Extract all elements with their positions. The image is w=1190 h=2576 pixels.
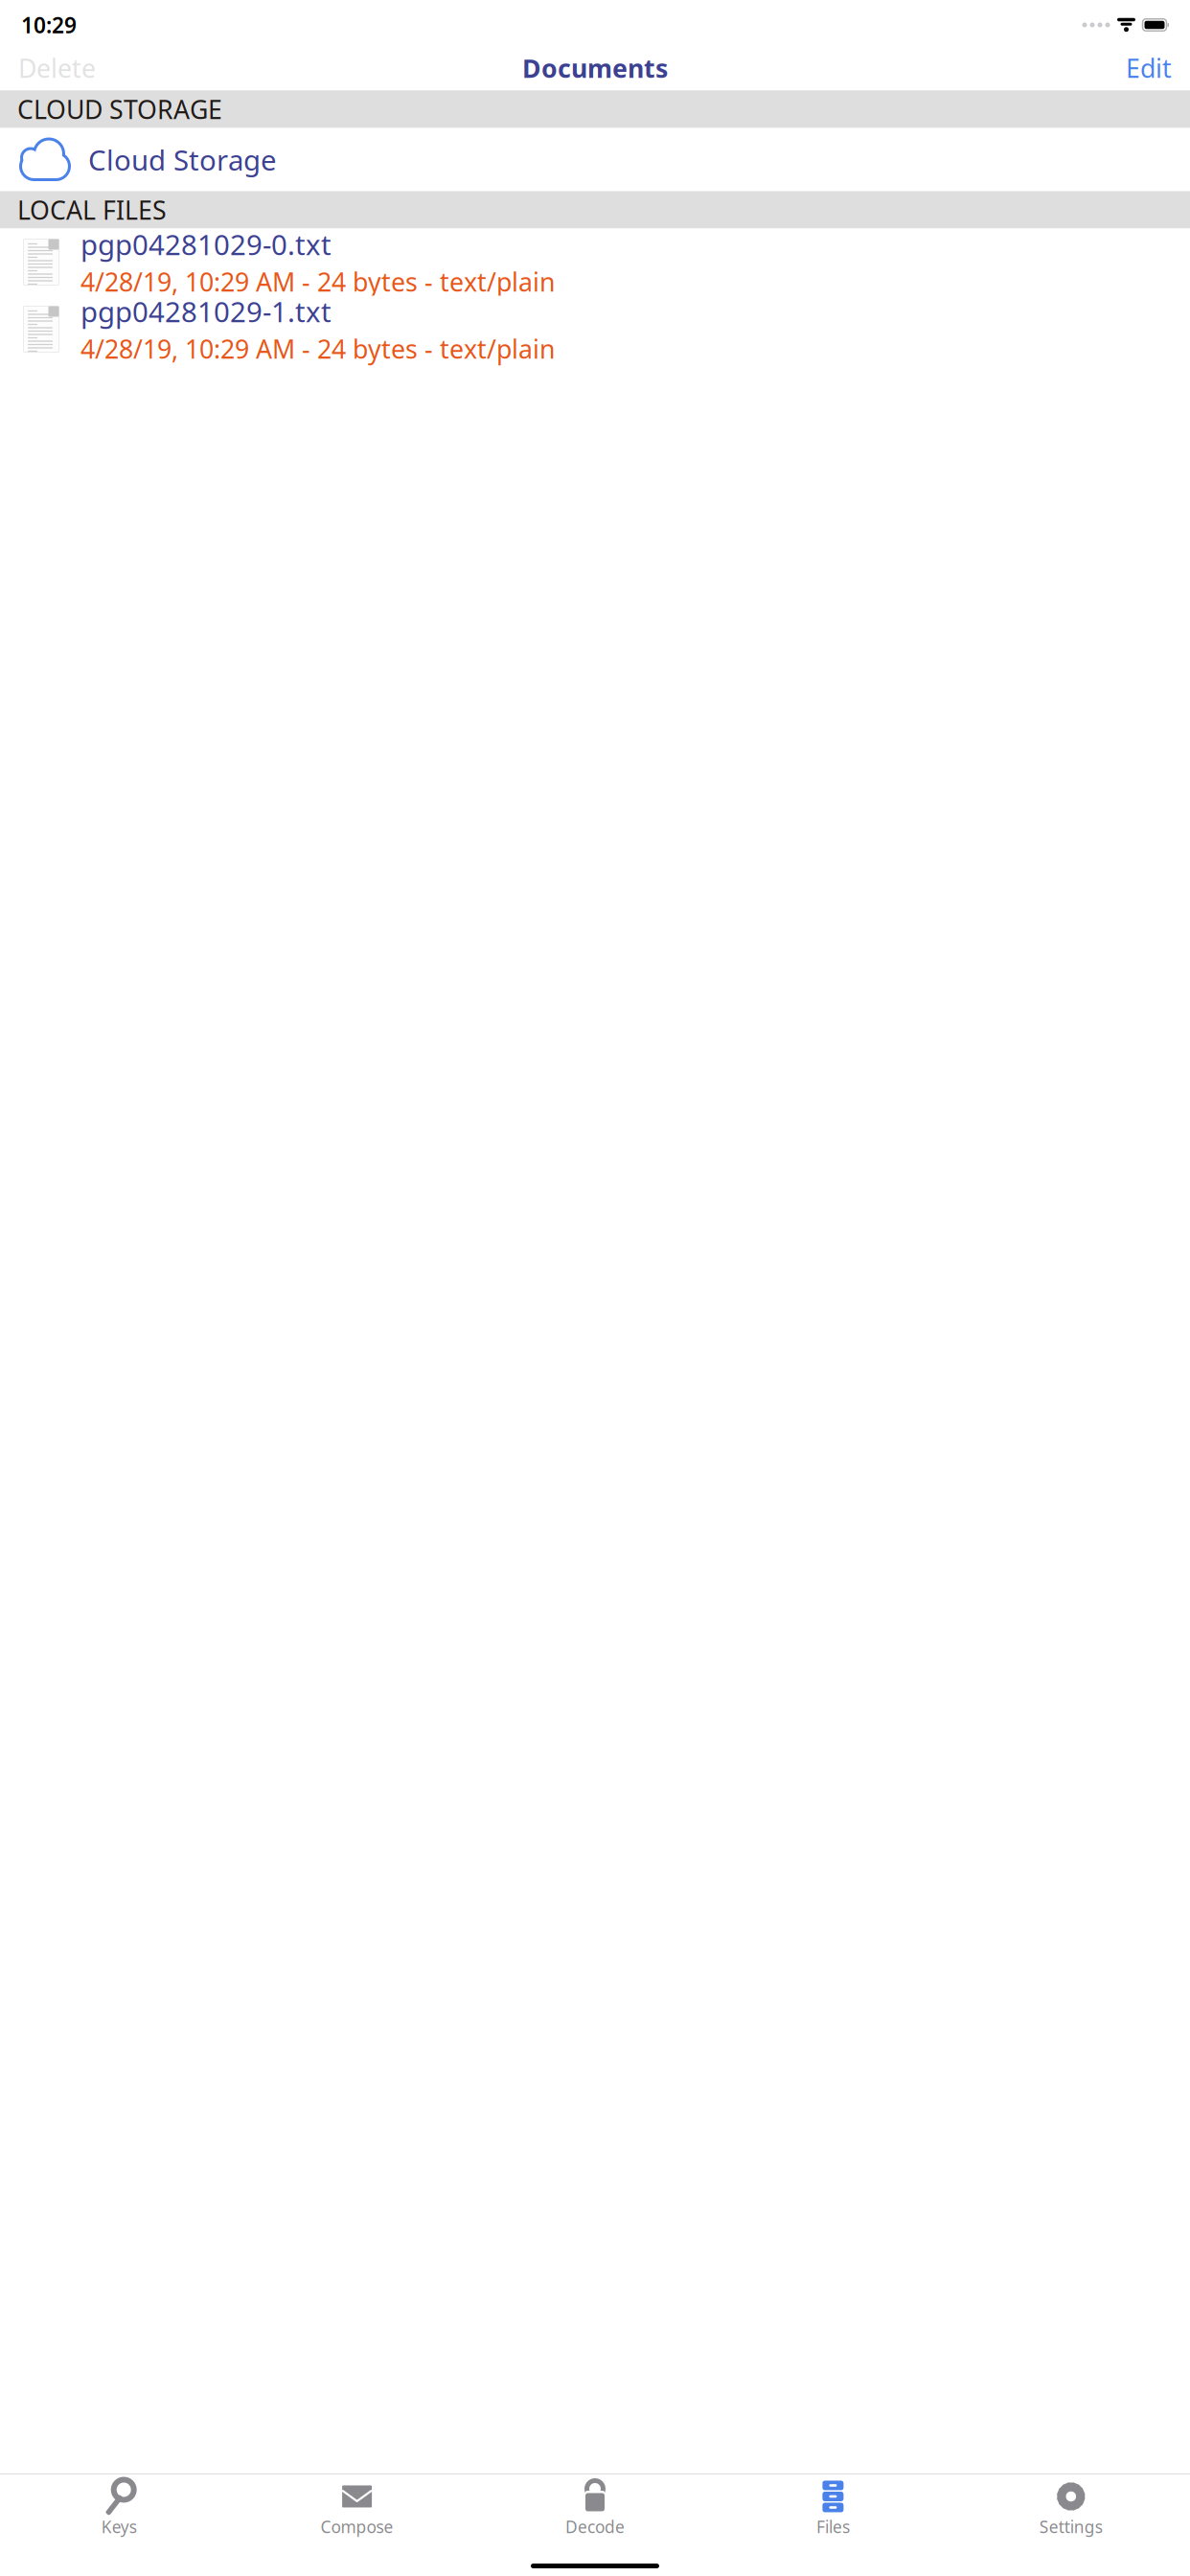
staticText: Edit	[1126, 51, 1172, 85]
staticText: pgp04281029-1.txt	[80, 293, 332, 330]
button[interactable]: Delete	[18, 43, 96, 93]
staticText: 4/28/19, 10:29 AM - 24 bytes - text/plai…	[80, 265, 555, 299]
staticText: Documents	[522, 51, 668, 85]
button[interactable]: pgp04281029-1.txt	[0, 296, 1190, 363]
button[interactable]: Decode	[476, 2474, 714, 2543]
staticText: Cloud Storage	[88, 141, 277, 178]
staticText: CLOUD STORAGE	[17, 92, 222, 126]
staticText: Settings	[1039, 2516, 1103, 2538]
staticText: Compose	[321, 2516, 393, 2538]
staticText: Delete	[18, 51, 96, 85]
button[interactable]: Settings	[952, 2474, 1190, 2543]
staticText: Keys	[101, 2516, 137, 2538]
button[interactable]: Cloud Storage	[0, 128, 1190, 191]
staticText: 4/28/19, 10:29 AM - 24 bytes - text/plai…	[80, 332, 555, 366]
button[interactable]: Compose	[238, 2474, 476, 2543]
button[interactable]: pgp04281029-0.txt	[0, 229, 1190, 296]
staticText: pgp04281029-0.txt	[80, 225, 332, 263]
staticText: Decode	[565, 2516, 625, 2538]
staticText: Files	[816, 2516, 850, 2538]
button[interactable]: Files	[714, 2474, 952, 2543]
staticText: LOCAL FILES	[17, 193, 167, 227]
button[interactable]: Edit	[1126, 43, 1172, 93]
staticText: 10:29	[21, 10, 77, 39]
button[interactable]: Keys	[0, 2474, 238, 2543]
